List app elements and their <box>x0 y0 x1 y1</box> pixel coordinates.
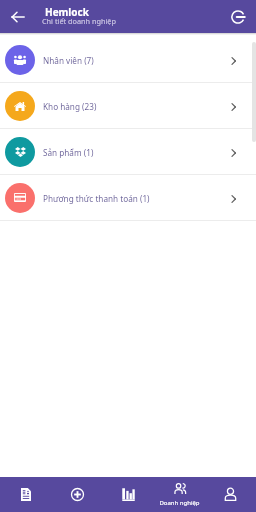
staticText: Phương thức thanh toán (1) <box>43 193 150 204</box>
staticText: Sản phẩm (1) <box>43 147 94 158</box>
button[interactable]: Kho hàng (23) <box>0 83 256 128</box>
button[interactable]: Nhân viên (7) <box>0 37 256 82</box>
button[interactable]: Profile <box>205 477 256 512</box>
button[interactable]: Reports <box>103 477 154 512</box>
staticText: Kho hàng (23) <box>43 101 97 112</box>
staticText: Nhân viên (7) <box>43 55 94 66</box>
staticText: Chi tiết doanh nghiệp <box>42 16 116 26</box>
staticText: Hemlock <box>45 5 89 19</box>
staticText: Doanh nghiệp <box>159 499 200 507</box>
button[interactable]: Sản phẩm (1) <box>0 129 256 174</box>
button[interactable]: Business <box>154 477 205 512</box>
button[interactable]: Phương thức thanh toán (1) <box>0 175 256 220</box>
button[interactable]: Back <box>7 6 29 28</box>
button[interactable]: Refresh <box>228 7 248 27</box>
button[interactable]: Invoices <box>0 477 52 512</box>
button[interactable]: Add <box>52 477 103 512</box>
